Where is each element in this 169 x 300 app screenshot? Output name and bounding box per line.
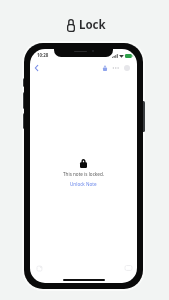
button[interactable]: Unlock Note (68, 180, 99, 188)
button[interactable]: New note (123, 263, 133, 273)
staticText: Lock (79, 17, 106, 33)
staticText: Unlock Note (70, 181, 97, 187)
button[interactable]: Account (122, 63, 131, 72)
button[interactable]: More options (110, 63, 119, 72)
staticText: This note is locked. (63, 171, 104, 177)
button[interactable]: Markup (35, 263, 45, 273)
button[interactable]: Locked (100, 63, 109, 72)
staticText: 10:28 (37, 52, 49, 58)
button[interactable]: Back (32, 63, 41, 72)
